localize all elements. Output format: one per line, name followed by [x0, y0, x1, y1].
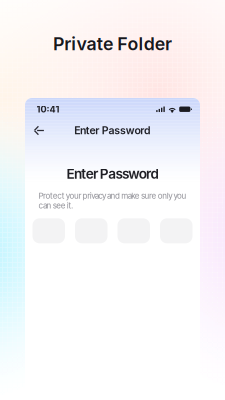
- staticText: Protect your privacy and make sure only …: [38, 191, 187, 210]
- staticText: Enter Password: [66, 165, 158, 182]
- staticText: Private Folder: [53, 33, 172, 54]
- staticText: 10:41: [36, 104, 59, 115]
- button[interactable]: Back: [29, 121, 47, 139]
- staticText: Enter Password: [74, 124, 151, 137]
